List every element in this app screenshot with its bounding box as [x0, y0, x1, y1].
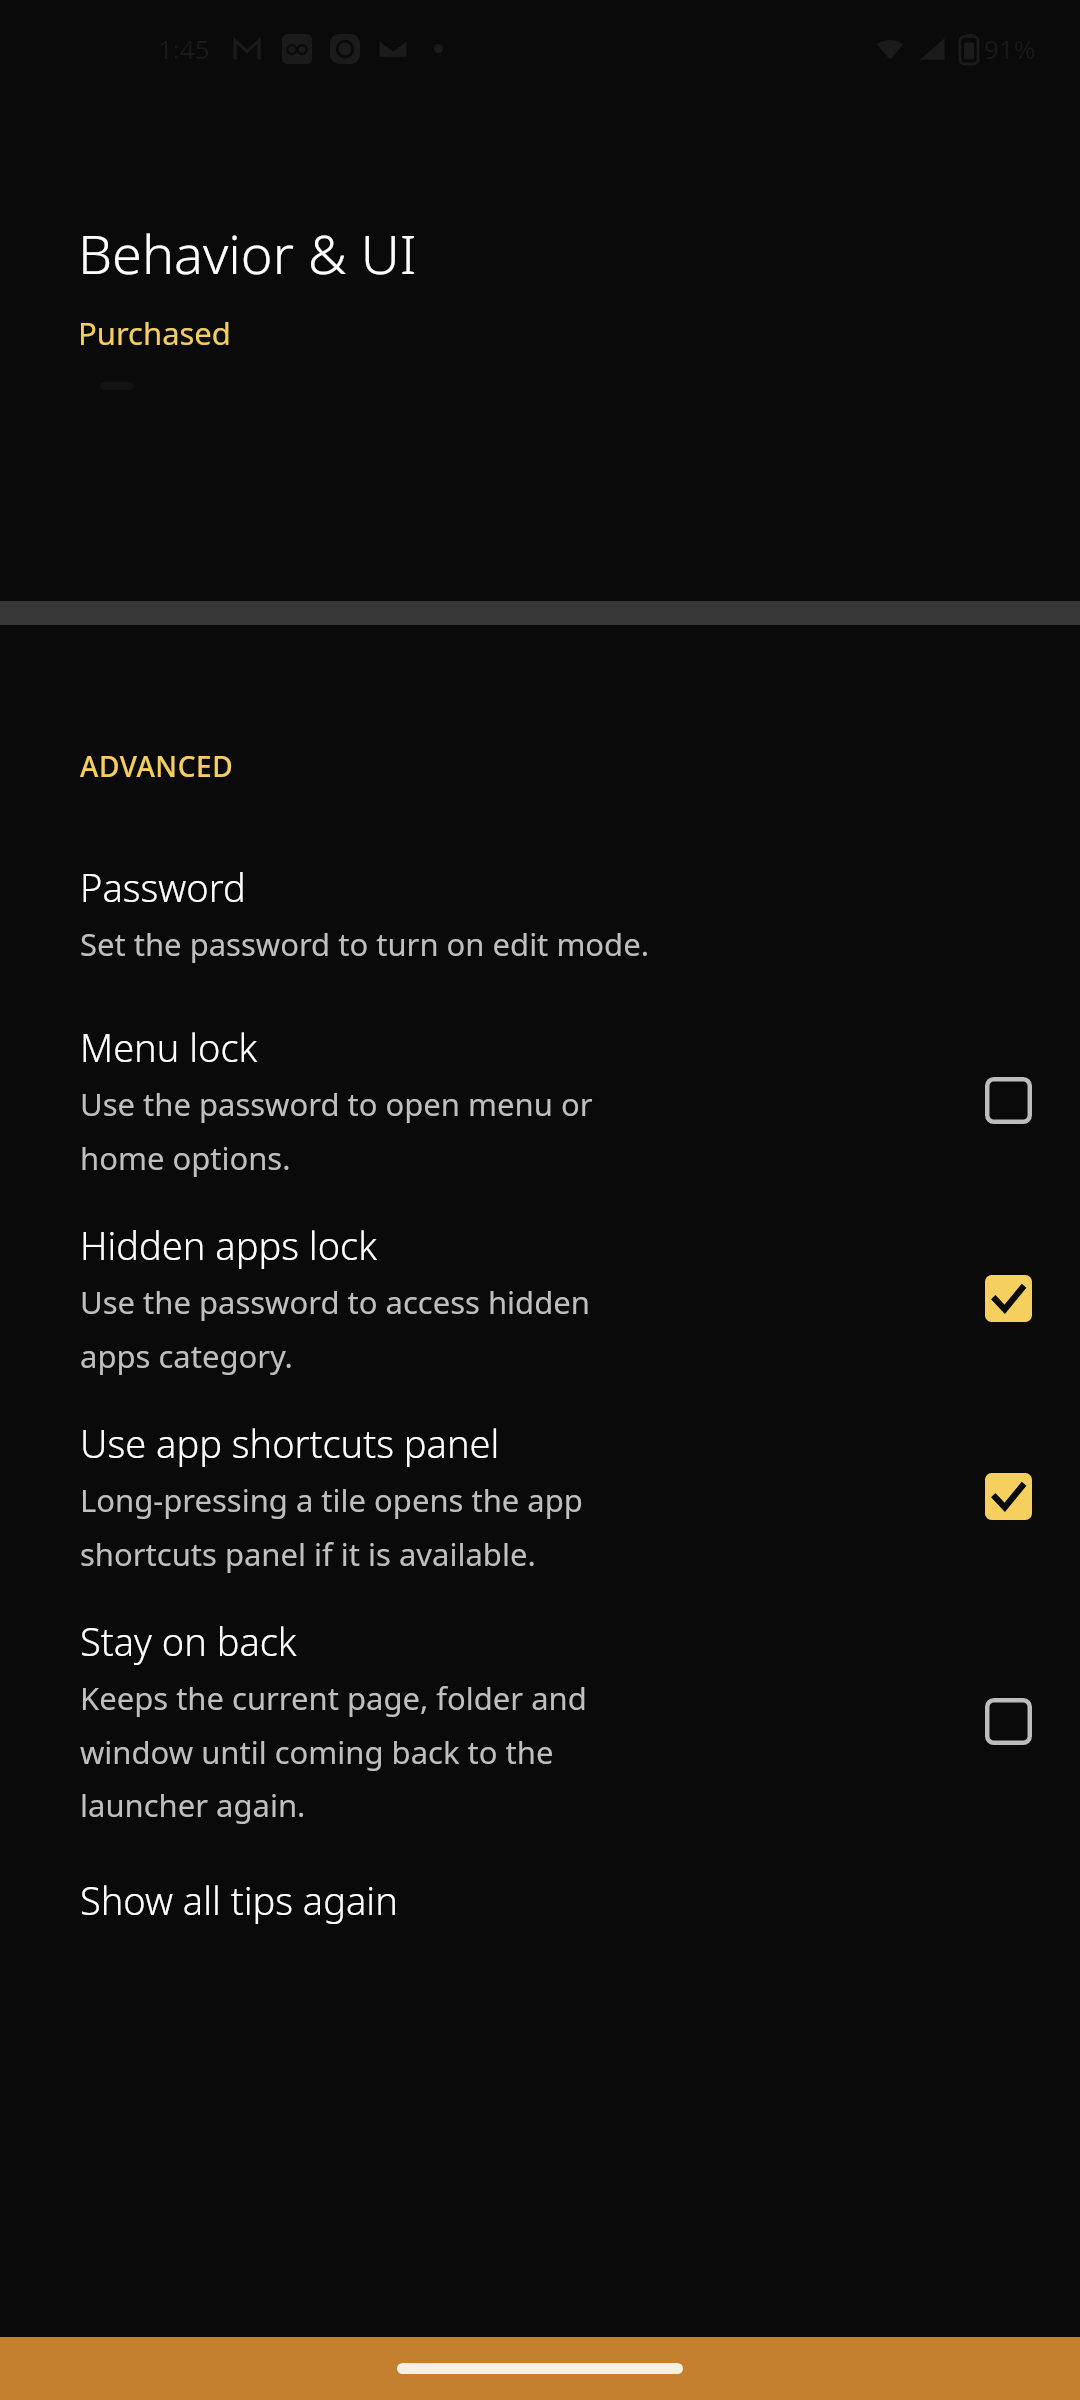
button[interactable]: Show all tips again [0, 1874, 1080, 1926]
button[interactable]: Use app shortcuts panel [0, 1417, 1080, 1575]
staticText: Stay on back [80, 1615, 297, 1667]
button[interactable]: Menu lock [0, 1021, 1080, 1179]
staticText: Purchased [78, 312, 231, 354]
staticText: Show all tips again [80, 1874, 398, 1926]
staticText: 91% [984, 31, 1036, 66]
button[interactable]: Checked [980, 1270, 1036, 1326]
button[interactable]: Unchecked [980, 1693, 1036, 1749]
staticText: Keeps the current page, folder and windo… [80, 1677, 587, 1826]
staticText: Use the password to open menu or home op… [80, 1083, 593, 1179]
staticText: Menu lock [80, 1021, 258, 1073]
button[interactable]: Password [0, 861, 1080, 965]
staticText: 1:45 [158, 31, 210, 66]
staticText: Use the password to access hidden apps c… [80, 1281, 590, 1377]
button[interactable]: Stay on back [0, 1615, 1080, 1826]
staticText: Password [80, 861, 246, 913]
staticText: ADVANCED [80, 747, 234, 785]
staticText: Set the password to turn on edit mode. [80, 923, 649, 965]
staticText: Hidden apps lock [80, 1219, 377, 1271]
button[interactable]: Unchecked [980, 1072, 1036, 1128]
staticText: Behavior & UI [78, 216, 417, 290]
button[interactable]: Checked [980, 1468, 1036, 1524]
staticText: Use app shortcuts panel [80, 1417, 500, 1469]
staticText: Long-pressing a tile opens the app short… [80, 1479, 583, 1575]
button[interactable]: Hidden apps lock [0, 1219, 1080, 1377]
